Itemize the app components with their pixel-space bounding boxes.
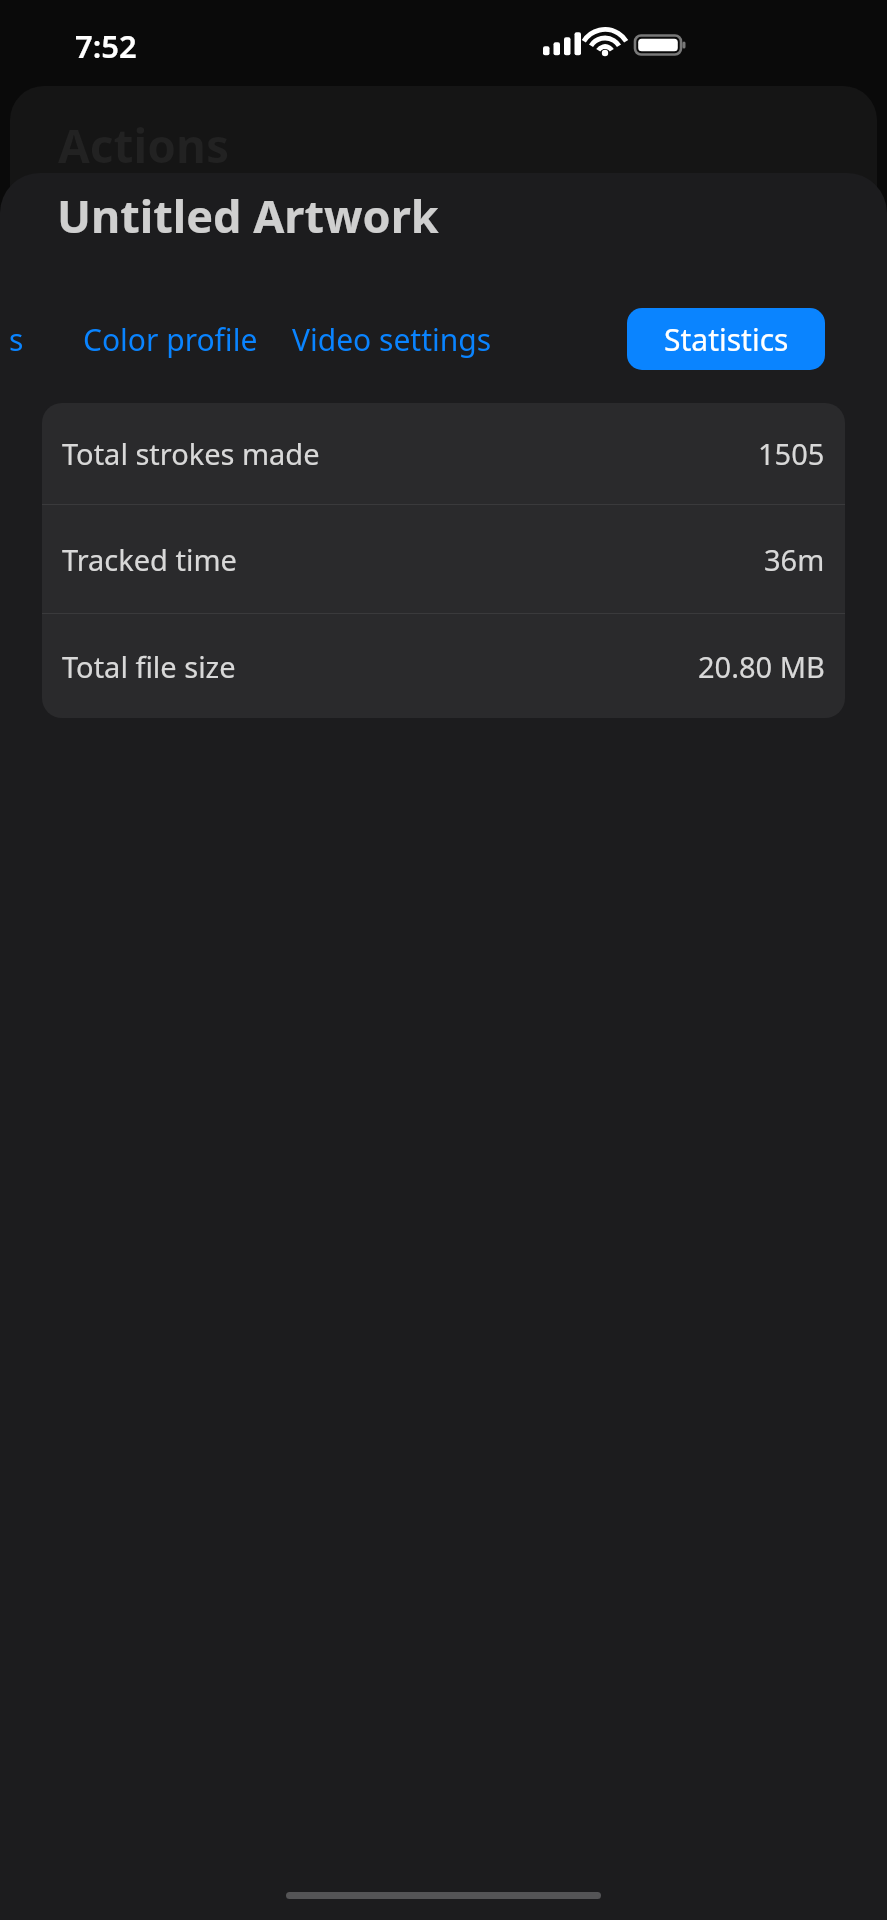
button[interactable]: Total file size (42, 614, 845, 718)
staticText: 20.80 MB (698, 647, 825, 686)
button[interactable]: Video settings (282, 308, 502, 370)
button[interactable]: s (0, 308, 32, 370)
button[interactable]: Statistics (627, 308, 825, 370)
staticText: Video settings (292, 319, 492, 360)
staticText: 7:52 (75, 25, 137, 67)
button[interactable]: Color profile (70, 308, 270, 370)
staticText: Statistics (664, 319, 789, 360)
button[interactable]: Total strokes made (42, 403, 845, 504)
staticText: Color profile (83, 319, 258, 360)
staticText: Total strokes made (62, 434, 320, 473)
staticText: Actions (58, 114, 230, 177)
staticText: s (9, 319, 24, 360)
staticText: 36m (764, 540, 825, 579)
staticText: Total file size (62, 647, 236, 686)
staticText: Untitled Artwork (57, 185, 439, 246)
button[interactable]: Tracked time (42, 505, 845, 613)
staticText: 1505 (758, 434, 825, 473)
staticText: Tracked time (62, 540, 237, 579)
